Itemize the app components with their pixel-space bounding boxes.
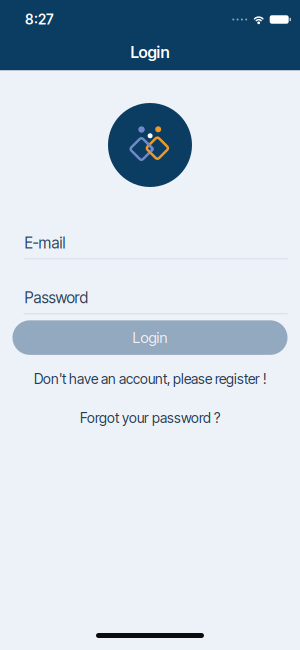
staticText: Login <box>132 329 167 346</box>
button[interactable]: Password <box>0 289 300 314</box>
staticText: E-mail <box>24 234 65 252</box>
staticText: 8:27 <box>25 11 54 28</box>
button[interactable]: Don't have an account, please register ! <box>34 371 266 387</box>
button[interactable]: E-mail <box>0 234 300 259</box>
staticText: Don't have an account, please register ! <box>34 371 266 387</box>
staticText: Login <box>130 43 169 61</box>
button[interactable]: Forgot your password ? <box>80 410 220 426</box>
button[interactable]: Login <box>12 320 287 355</box>
staticText: Password <box>24 289 88 306</box>
staticText: Forgot your password ? <box>80 410 220 426</box>
